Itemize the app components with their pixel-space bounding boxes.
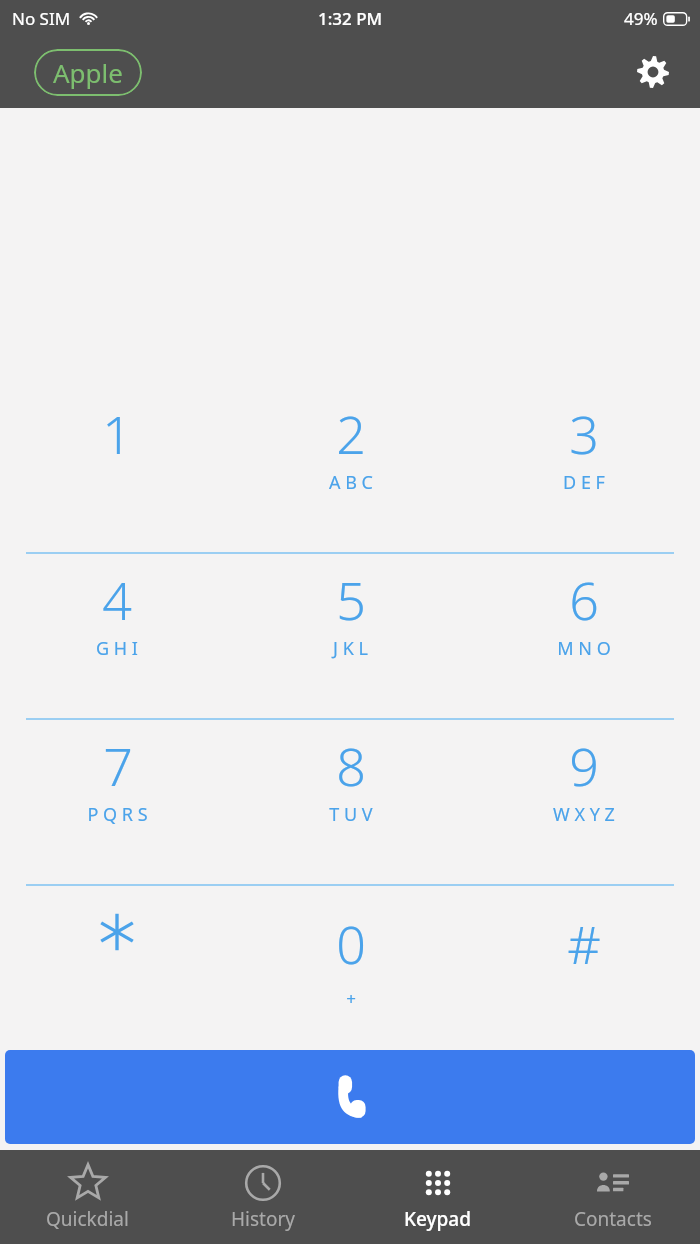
staticText: A B C <box>329 470 373 495</box>
button[interactable]: Quickdial <box>0 1150 175 1244</box>
staticText: No SIM <box>12 7 71 30</box>
button[interactable]: Keypad <box>350 1150 525 1244</box>
staticText: 6 <box>569 564 599 635</box>
button[interactable]: Apple <box>34 49 142 96</box>
staticText: P Q R S <box>87 802 148 827</box>
staticText: Apple <box>53 55 123 90</box>
staticText: G H I <box>96 636 138 661</box>
button[interactable]: 3 <box>467 388 700 554</box>
staticText: 7 <box>103 730 133 801</box>
staticText: M N O <box>557 636 611 661</box>
staticText: T U V <box>329 802 373 827</box>
staticText: 1:32 PM <box>318 7 383 30</box>
button[interactable] <box>0 886 234 1044</box>
staticText: Contacts <box>574 1206 652 1232</box>
button[interactable]: 8 <box>234 720 467 886</box>
button[interactable]: 9 <box>467 720 700 886</box>
staticText: 1 <box>102 398 132 469</box>
staticText: Quickdial <box>46 1206 129 1232</box>
button[interactable]: 0 <box>234 886 467 1044</box>
staticText: 2 <box>336 398 366 469</box>
button[interactable]: 5 <box>234 554 467 720</box>
button[interactable]: 1 <box>0 388 234 554</box>
button[interactable]: Settings <box>629 48 677 96</box>
staticText: + <box>346 987 356 1010</box>
button[interactable]: 6 <box>467 554 700 720</box>
button[interactable]: 2 <box>234 388 467 554</box>
staticText: W X Y Z <box>553 802 615 827</box>
staticText: 49% <box>624 7 658 30</box>
staticText: 9 <box>569 730 599 801</box>
button[interactable]: # <box>467 886 700 1044</box>
button[interactable]: Contacts <box>525 1150 700 1244</box>
staticText: 3 <box>569 398 599 469</box>
staticText: 5 <box>336 564 366 635</box>
staticText: 8 <box>336 730 366 801</box>
staticText: Keypad <box>404 1206 471 1232</box>
button[interactable]: 4 <box>0 554 234 720</box>
button[interactable]: History <box>175 1150 350 1244</box>
staticText: D E F <box>563 470 605 495</box>
staticText: 4 <box>102 564 132 635</box>
button[interactable]: Call <box>5 1050 695 1144</box>
staticText: # <box>567 908 601 979</box>
staticText: History <box>231 1206 295 1232</box>
staticText: 0 <box>336 908 366 979</box>
button[interactable]: 7 <box>0 720 234 886</box>
staticText: J K L <box>333 636 368 661</box>
